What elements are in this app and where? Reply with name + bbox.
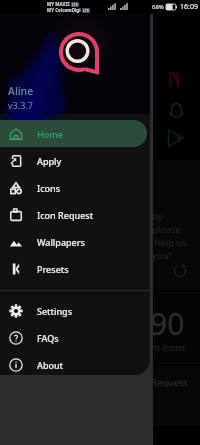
button[interactable]: Apply [0,147,147,174]
staticText: by [152,210,163,223]
staticText: LTE [72,2,78,7]
staticText: you! [152,249,172,262]
staticText: 68% [152,3,164,11]
staticText: Request [151,376,188,389]
staticText: FAQs [37,332,59,344]
staticText: Home [37,128,63,140]
staticText: Icons [37,182,61,194]
staticText: MY MAXIS [47,1,70,7]
staticText: Settings [37,305,73,317]
staticText: m icons [151,341,186,354]
staticText: Icon Request [37,209,94,221]
staticText: Apply [37,155,62,167]
button[interactable]: Home [0,120,147,147]
button[interactable]: Wallpapers [0,228,147,255]
button[interactable]: About [0,351,147,375]
staticText: Wallpapers [37,236,85,248]
staticText: About [37,359,64,371]
button[interactable]: Icon Request [0,201,147,228]
button[interactable]: Settings [0,297,147,324]
button[interactable]: FAQs [0,324,147,351]
staticText: MY CelcomDigi [47,7,81,13]
staticText: 16:09 [180,2,198,12]
button[interactable]: Presets [0,255,147,282]
staticText: Presets [37,263,69,275]
staticText: please [152,223,181,236]
staticText: LTE [83,8,89,13]
button[interactable]: Icons [0,174,147,201]
staticText: v3.3.7 [8,99,33,111]
staticText: 90 [150,303,185,344]
staticText: help us [152,236,187,249]
staticText: Aline [8,84,34,98]
